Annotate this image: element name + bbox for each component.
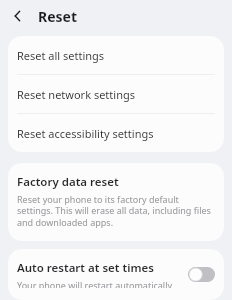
button[interactable]: Reset accessibility settings (8, 114, 224, 152)
staticText: Your phone will restart automatically wi… (17, 279, 180, 288)
button[interactable]: Auto restart at set times (8, 249, 224, 300)
staticText: Reset your phone to its factory default … (17, 193, 212, 229)
button[interactable]: Auto restart at set times toggle, off (186, 264, 216, 284)
staticText: Reset network settings (17, 87, 135, 102)
staticText: Reset (38, 7, 78, 26)
staticText: Auto restart at set times (17, 260, 154, 276)
button[interactable]: Factory data reset (8, 163, 224, 241)
button[interactable]: Reset all settings (8, 36, 224, 74)
staticText: Reset all settings (17, 48, 105, 63)
staticText: Factory data reset (17, 174, 119, 190)
button[interactable]: Back (4, 2, 32, 30)
button[interactable]: Reset network settings (8, 75, 224, 113)
staticText: Reset accessibility settings (17, 126, 154, 141)
